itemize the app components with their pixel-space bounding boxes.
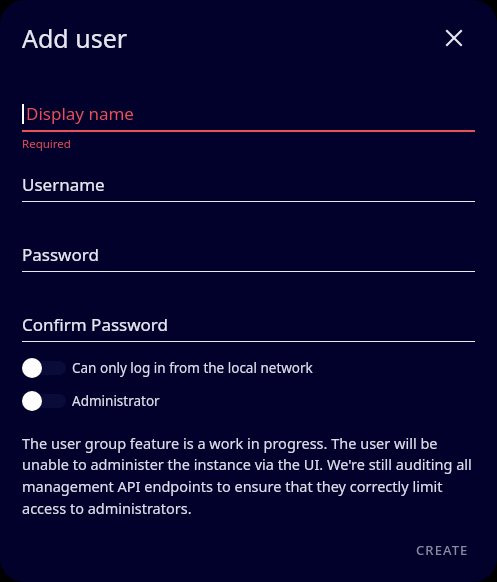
button[interactable]: Can only log in from the local network — [22, 351, 475, 384]
staticText: Add user — [22, 21, 128, 55]
staticText: Display name — [26, 102, 134, 125]
staticText: Required — [22, 136, 71, 152]
button[interactable]: Username — [22, 173, 475, 202]
button[interactable]: CREATE — [402, 532, 483, 568]
button[interactable]: Administrator — [22, 384, 475, 417]
staticText: CREATE — [416, 541, 469, 559]
button[interactable]: Display name — [22, 102, 475, 152]
staticText: Username — [22, 173, 105, 196]
staticText: Can only log in from the local network — [72, 359, 313, 377]
button[interactable]: Password — [22, 243, 475, 272]
staticText: The user group feature is a work in prog… — [22, 433, 475, 519]
staticText: Confirm Password — [22, 313, 168, 336]
button[interactable]: Close — [437, 21, 471, 55]
staticText: Administrator — [72, 392, 160, 410]
staticText: Password — [22, 243, 99, 266]
button[interactable]: Confirm Password — [22, 313, 475, 342]
